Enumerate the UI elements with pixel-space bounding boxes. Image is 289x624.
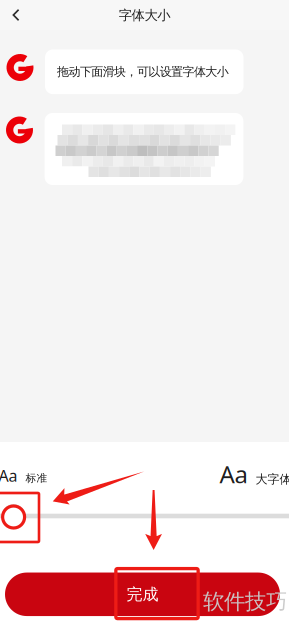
staticText: 字体大小 bbox=[119, 7, 170, 23]
staticText: 软件技巧 bbox=[203, 588, 287, 615]
staticText: Aa bbox=[219, 458, 247, 490]
button[interactable]: Back bbox=[0, 0, 32, 30]
staticText: 标准 bbox=[25, 472, 47, 485]
staticText: 大字体 bbox=[255, 472, 289, 487]
staticText: 拖动下面滑块，可以设置字体大小 bbox=[57, 64, 229, 79]
button[interactable]: 完成 bbox=[5, 572, 280, 616]
staticText: Aa bbox=[0, 465, 17, 486]
staticText: 完成 bbox=[126, 584, 158, 604]
